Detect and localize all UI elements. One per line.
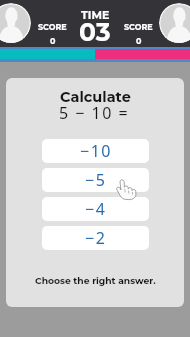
staticText: 0 (50, 36, 56, 46)
staticText: −2 (85, 227, 107, 249)
staticText: SCORE (124, 22, 153, 32)
button[interactable]: Player profile (159, 3, 190, 43)
staticText: Calculate (60, 88, 131, 106)
button[interactable]: Player profile (0, 3, 31, 43)
staticText: −4 (85, 198, 107, 220)
staticText: Choose the right answer. (35, 275, 156, 286)
button[interactable]: −5 (42, 168, 149, 192)
staticText: 0 (136, 36, 142, 46)
staticText: 03 (79, 17, 111, 47)
button[interactable]: SCORE (122, 22, 155, 46)
staticText: TIME (81, 8, 110, 21)
button[interactable]: −4 (42, 197, 149, 221)
staticText: −5 (85, 169, 107, 191)
other: Pointer (114, 177, 143, 201)
button[interactable]: −10 (42, 139, 149, 163)
button[interactable]: SCORE (36, 22, 69, 46)
staticText: −10 (80, 140, 112, 162)
staticText: 5 − 10 = (59, 102, 130, 124)
button[interactable]: −2 (42, 226, 149, 250)
staticText: SCORE (38, 22, 67, 32)
